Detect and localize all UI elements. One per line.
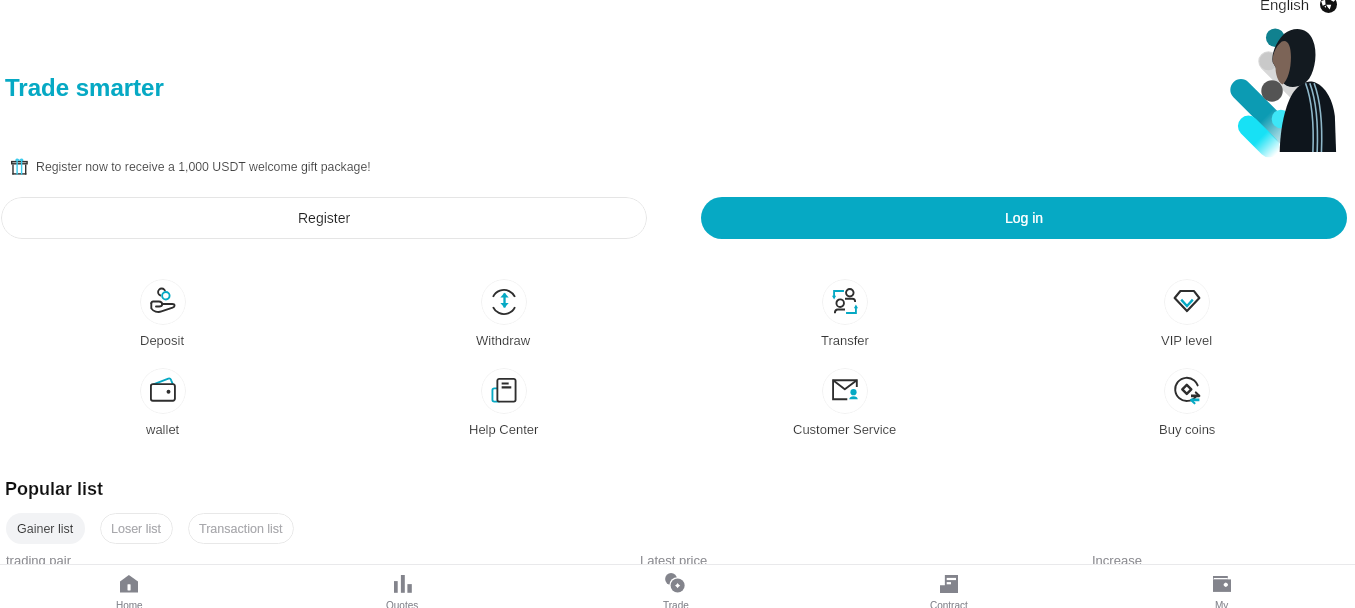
staticText: Gainer list xyxy=(17,522,74,536)
staticText: Register xyxy=(298,210,351,226)
button[interactable]: Log in xyxy=(701,197,1347,239)
button[interactable]: Transaction list xyxy=(188,513,294,544)
staticText: Trade xyxy=(663,600,689,608)
staticText: Loser list xyxy=(111,522,162,536)
staticText: Quotes xyxy=(386,600,419,608)
button[interactable]: Register xyxy=(1,197,647,239)
staticText: Popular list xyxy=(5,479,104,499)
button[interactable]: Customer Service xyxy=(674,368,1016,437)
button[interactable]: Home xyxy=(0,565,266,608)
button[interactable]: Buy coins xyxy=(1016,368,1355,437)
staticText: trading pair xyxy=(6,553,72,568)
staticText: Home xyxy=(116,600,143,608)
button[interactable]: Deposit xyxy=(0,279,333,348)
staticText: Help Center xyxy=(469,422,539,437)
staticText: Trade smarter xyxy=(5,74,164,101)
button[interactable]: Quotes xyxy=(266,565,539,608)
staticText: Buy coins xyxy=(1159,422,1216,437)
button[interactable]: Withdraw xyxy=(333,279,674,348)
staticText: Transfer xyxy=(821,333,869,348)
staticText: Transaction list xyxy=(199,522,283,536)
button[interactable]: My xyxy=(1085,565,1355,608)
staticText: English xyxy=(1260,0,1310,13)
staticText: Log in xyxy=(1005,210,1044,226)
button[interactable]: Gainer list xyxy=(6,513,85,544)
staticText: Latest price xyxy=(640,553,708,568)
button[interactable]: Trade xyxy=(539,565,812,608)
staticText: wallet xyxy=(146,422,180,437)
staticText: VIP level xyxy=(1161,333,1213,348)
staticText: Withdraw xyxy=(476,333,531,348)
button[interactable]: wallet xyxy=(0,368,333,437)
button[interactable]: Help Center xyxy=(333,368,674,437)
button[interactable]: Transfer xyxy=(674,279,1016,348)
staticText: Register now to receive a 1,000 USDT wel… xyxy=(36,160,371,174)
staticText: My xyxy=(1215,600,1229,608)
button[interactable]: Loser list xyxy=(100,513,173,544)
staticText: Deposit xyxy=(140,333,185,348)
staticText: Increase xyxy=(1092,553,1142,568)
other: Language xyxy=(1320,0,1337,13)
button[interactable]: VIP level xyxy=(1016,279,1355,348)
staticText: Contract xyxy=(930,600,968,608)
button[interactable]: English xyxy=(1256,0,1341,17)
staticText: Customer Service xyxy=(793,422,897,437)
button[interactable]: Contract xyxy=(812,565,1085,608)
